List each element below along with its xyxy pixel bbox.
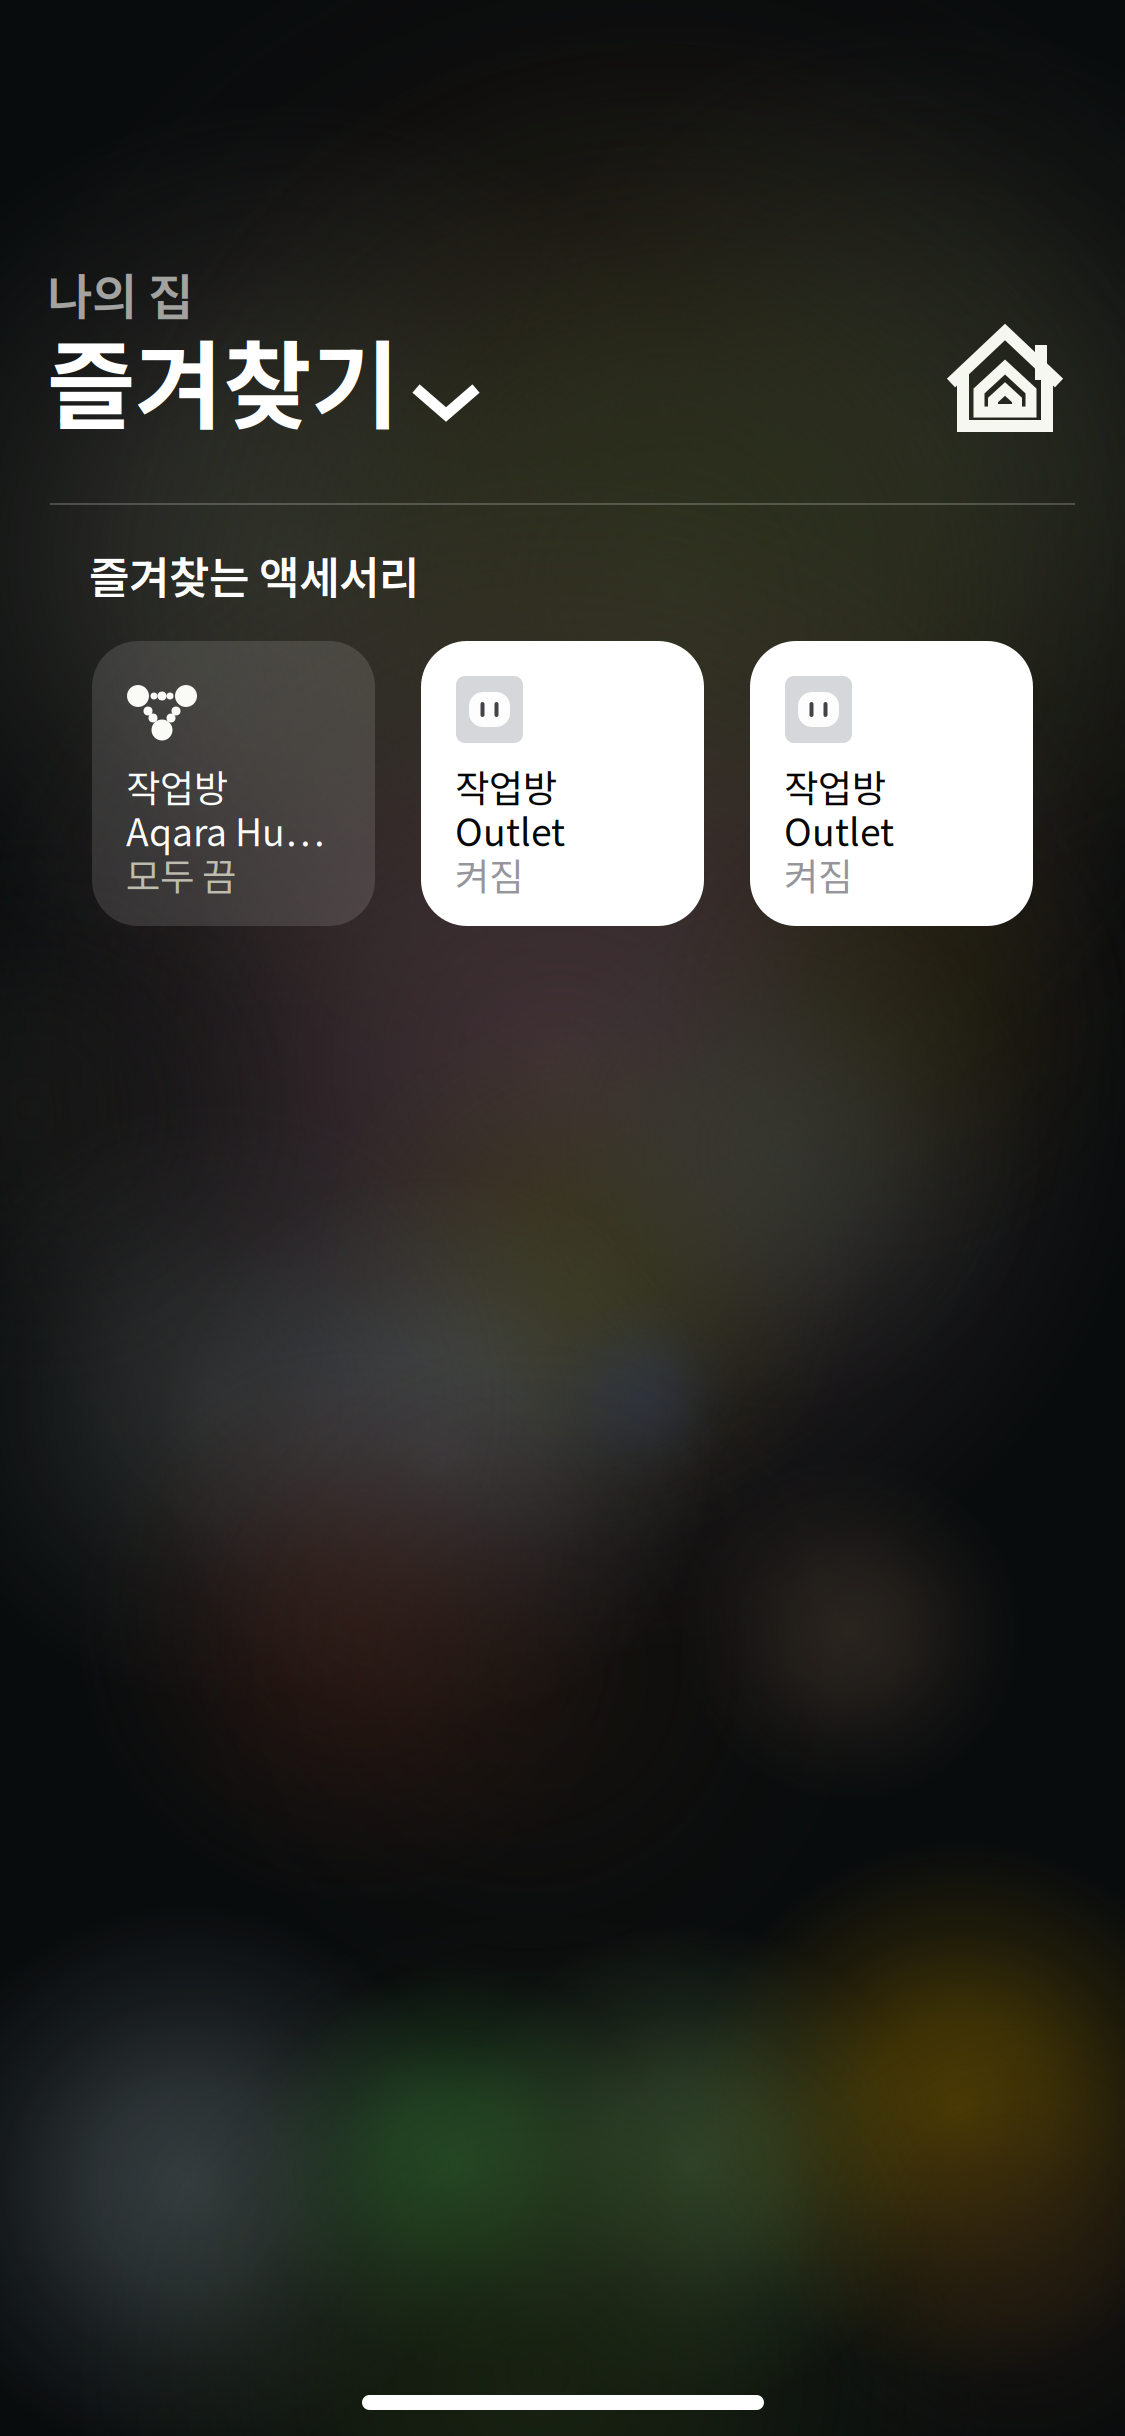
- staticText: 작업방: [126, 759, 228, 813]
- staticText: 즐겨찾기: [47, 310, 399, 449]
- button[interactable]: Home settings: [945, 325, 1065, 433]
- button[interactable]: 즐겨찾기: [47, 310, 482, 449]
- staticText: 켜짐: [784, 847, 852, 901]
- staticText: Outlet: [784, 803, 894, 857]
- button[interactable]: 작업방: [421, 641, 704, 926]
- staticText: 즐겨찾는 액세서리: [89, 543, 419, 607]
- staticText: 작업방: [784, 759, 886, 813]
- staticText: Outlet: [455, 803, 565, 857]
- staticText: 작업방: [455, 759, 557, 813]
- button[interactable]: 작업방: [92, 641, 375, 926]
- staticText: 모두 끔: [126, 847, 236, 901]
- staticText: 켜짐: [455, 847, 523, 901]
- staticText: 나의 집: [47, 258, 193, 329]
- button[interactable]: 작업방: [750, 641, 1033, 926]
- staticText: Aqara Hu…: [126, 803, 325, 857]
